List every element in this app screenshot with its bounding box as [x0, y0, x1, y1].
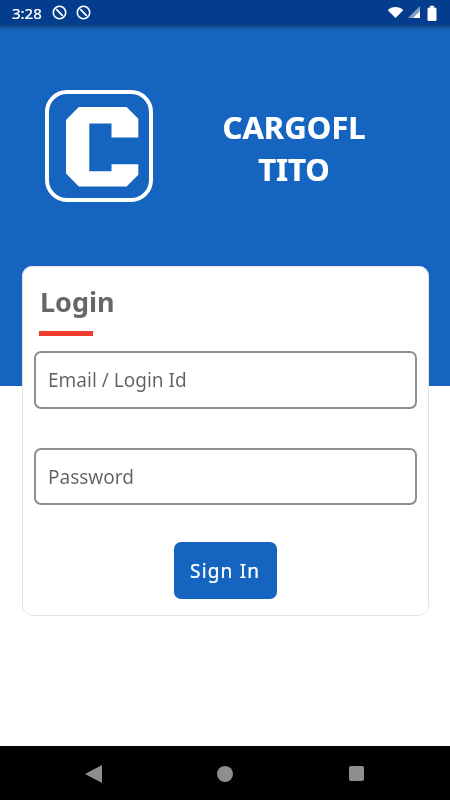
button[interactable]: Sign In [174, 542, 277, 599]
button[interactable] [85, 765, 102, 783]
staticText: CARGOFL TITO [222, 106, 366, 190]
staticText: Login [40, 283, 115, 320]
staticText: Email / Login Id [48, 367, 187, 393]
button[interactable]: Email / Login Id [34, 351, 417, 409]
staticText: Sign In [190, 558, 261, 584]
staticText: Password [48, 464, 134, 490]
button[interactable] [349, 766, 364, 781]
button[interactable]: Password [34, 448, 417, 505]
staticText: 3:28 [12, 3, 42, 23]
button[interactable] [217, 766, 233, 782]
